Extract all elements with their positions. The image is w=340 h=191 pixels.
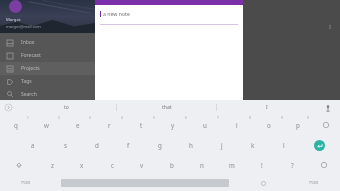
button[interactable]: Backspace [311, 115, 340, 135]
button[interactable]: I [217, 100, 316, 115]
staticText: f [127, 141, 130, 149]
staticText: o [267, 121, 271, 129]
staticText: z [51, 161, 54, 169]
staticText: 4 [121, 116, 123, 120]
button[interactable]: f [113, 135, 144, 155]
staticText: k [251, 141, 255, 149]
staticText: that [162, 104, 172, 111]
button[interactable]: Forecast [0, 49, 95, 62]
staticText: i [236, 121, 238, 129]
staticText: s [64, 141, 67, 149]
button[interactable]: p [285, 115, 311, 135]
staticText: a new note [103, 10, 130, 17]
button[interactable]: z [37, 155, 67, 175]
button[interactable]: r [93, 115, 125, 135]
button[interactable]: s [49, 135, 81, 155]
staticText: r [108, 121, 111, 129]
staticText: p [296, 121, 300, 129]
button[interactable]: Voice input [316, 100, 340, 115]
staticText: 8 [249, 116, 251, 120]
staticText: ! [261, 161, 263, 169]
button[interactable]: a [17, 135, 49, 155]
staticText: 7 [217, 116, 219, 120]
button[interactable]: d [81, 135, 113, 155]
button[interactable]: Enter [299, 135, 340, 155]
staticText: Forecast [21, 52, 41, 59]
staticText: l [283, 141, 285, 149]
button[interactable]: q [0, 115, 31, 135]
button[interactable]: e [62, 115, 93, 135]
button[interactable]: to [16, 100, 116, 115]
staticText: ? [291, 161, 294, 169]
staticText: Search [21, 91, 37, 98]
button[interactable]: v [127, 155, 157, 175]
button[interactable]: n [187, 155, 217, 175]
staticText: margot@mail.com [6, 24, 41, 29]
staticText: d [95, 141, 99, 149]
button[interactable]: Emoji [307, 155, 340, 175]
staticText: 5 [153, 116, 155, 120]
staticText: x [80, 161, 84, 169]
button[interactable]: Period [239, 175, 288, 191]
staticText: t [140, 121, 143, 129]
button[interactable]: Shift [0, 155, 37, 175]
staticText: w [44, 121, 49, 129]
staticText: g [158, 141, 162, 149]
button[interactable]: h [175, 135, 206, 155]
staticText: e [76, 121, 80, 129]
staticText: ?123 [21, 180, 31, 186]
button[interactable]: ! [247, 155, 277, 175]
button[interactable]: l [268, 135, 299, 155]
button[interactable]: o [253, 115, 285, 135]
button[interactable]: c [97, 155, 127, 175]
button[interactable]: m [217, 155, 247, 175]
button[interactable]: More options [326, 23, 334, 31]
staticText: v [140, 161, 144, 169]
staticText: 0 [307, 116, 309, 120]
staticText: y [171, 121, 175, 129]
staticText: m [229, 161, 235, 169]
button[interactable]: a new note [100, 10, 238, 25]
button[interactable]: Projects [0, 62, 95, 75]
staticText: u [203, 121, 207, 129]
staticText: c [111, 161, 114, 169]
button[interactable]: Inbox [0, 36, 95, 49]
staticText: a [31, 141, 35, 149]
button[interactable]: w [31, 115, 62, 135]
button[interactable]: Tags [0, 75, 95, 88]
staticText: Projects [21, 65, 40, 72]
staticText: 3 [89, 116, 91, 120]
button[interactable]: k [237, 135, 268, 155]
button[interactable]: y [157, 115, 189, 135]
button[interactable]: x [67, 155, 97, 175]
button[interactable]: j [206, 135, 237, 155]
staticText: 2 items [111, 14, 126, 20]
staticText: n [200, 161, 204, 169]
button[interactable]: Account avatar [9, 0, 22, 13]
button[interactable]: u [189, 115, 221, 135]
button[interactable]: ?123 [288, 175, 340, 191]
staticText: 6 [185, 116, 187, 120]
staticText: Inbox [21, 39, 35, 46]
button[interactable]: Search [0, 88, 95, 100]
staticText: 9 [281, 116, 283, 120]
button[interactable]: b [157, 155, 187, 175]
staticText: h [189, 141, 193, 149]
button[interactable]: ? [277, 155, 307, 175]
button[interactable]: i [221, 115, 253, 135]
button[interactable]: g [144, 135, 175, 155]
staticText: to [64, 104, 69, 111]
staticText: q [14, 121, 18, 129]
staticText: I [266, 104, 268, 111]
button[interactable]: that [117, 100, 216, 115]
button[interactable]: ?123 [0, 175, 51, 191]
staticText: b [170, 161, 174, 169]
button[interactable]: Expand toolbar [0, 100, 16, 115]
staticText: j [221, 141, 223, 149]
button[interactable]: t [125, 115, 157, 135]
staticText: Tags [21, 78, 32, 85]
